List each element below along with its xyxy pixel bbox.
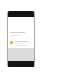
button[interactable]: Alert — [8, 39, 34, 47]
button[interactable] — [8, 30, 34, 37]
other: Alert — [10, 41, 13, 44]
